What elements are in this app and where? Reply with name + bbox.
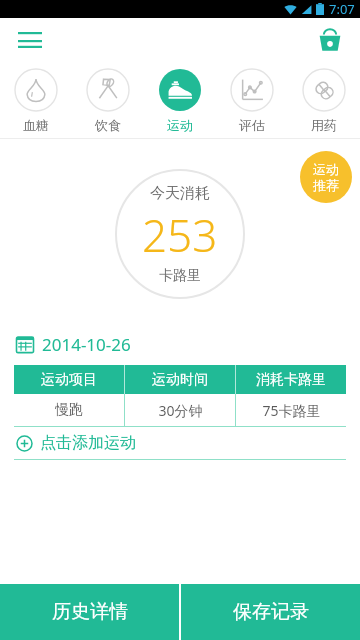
staticText: 饮食 <box>95 117 121 133</box>
button[interactable]: 运动 <box>300 151 352 203</box>
button[interactable]: 慢跑 <box>14 394 346 426</box>
staticText: 历史详情 <box>52 600 128 624</box>
staticText: 运动时间 <box>152 371 208 389</box>
staticText: 运动 <box>313 161 339 177</box>
button[interactable]: 饮食 <box>72 62 144 138</box>
staticText: 推荐 <box>313 177 339 193</box>
button[interactable]: Menu <box>10 20 50 60</box>
staticText: 7:07 <box>329 0 355 18</box>
button[interactable]: 血糖 <box>0 62 72 138</box>
staticText: 评估 <box>239 117 265 133</box>
button[interactable]: 2014-10-26 <box>16 329 360 359</box>
staticText: 慢跑 <box>55 401 83 419</box>
button[interactable]: 点击添加运动 <box>16 427 360 459</box>
button[interactable]: Basket <box>310 20 350 60</box>
staticText: 2014-10-26 <box>42 333 131 356</box>
button[interactable]: 保存记录 <box>181 584 360 640</box>
staticText: 30分钟 <box>158 401 203 420</box>
button[interactable]: 历史详情 <box>0 584 179 640</box>
staticText: 点击添加运动 <box>40 433 136 453</box>
staticText: 运动 <box>167 117 193 133</box>
staticText: 卡路里 <box>159 267 201 285</box>
staticText: 血糖 <box>23 117 49 133</box>
staticText: 保存记录 <box>233 600 309 624</box>
staticText: 用药 <box>311 117 337 133</box>
button[interactable]: 运动 <box>144 62 216 138</box>
staticText: 253 <box>142 205 218 265</box>
button[interactable]: 评估 <box>216 62 288 138</box>
staticText: 消耗卡路里 <box>256 371 326 389</box>
staticText: 运动项目 <box>41 371 97 389</box>
staticText: 75卡路里 <box>262 401 321 420</box>
staticText: 今天消耗 <box>150 184 210 203</box>
button[interactable]: 用药 <box>288 62 360 138</box>
